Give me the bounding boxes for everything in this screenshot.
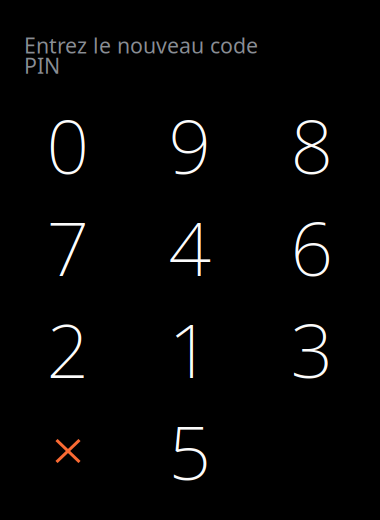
staticText: 0 — [46, 95, 89, 195]
staticText: 6 — [290, 197, 333, 297]
button[interactable]: Supprimer — [7, 400, 129, 502]
staticText: 1 — [168, 299, 211, 399]
button[interactable]: 7 — [7, 196, 129, 298]
button[interactable]: 2 — [7, 298, 129, 400]
button[interactable]: 8 — [251, 94, 373, 196]
button[interactable]: 4 — [129, 196, 251, 298]
button[interactable]: 9 — [129, 94, 251, 196]
staticText: 4 — [168, 197, 211, 297]
button[interactable]: 5 — [129, 400, 251, 502]
button[interactable]: 3 — [251, 298, 373, 400]
button[interactable]: 0 — [7, 94, 129, 196]
staticText: Entrez le nouveau code PIN — [24, 31, 258, 80]
staticText: 2 — [46, 299, 89, 399]
staticText: 8 — [290, 95, 333, 195]
staticText: 9 — [168, 95, 211, 195]
button[interactable]: 1 — [129, 298, 251, 400]
staticText: 3 — [290, 299, 333, 399]
button[interactable]: 6 — [251, 196, 373, 298]
staticText: 5 — [168, 401, 211, 501]
staticText: 7 — [46, 197, 89, 297]
